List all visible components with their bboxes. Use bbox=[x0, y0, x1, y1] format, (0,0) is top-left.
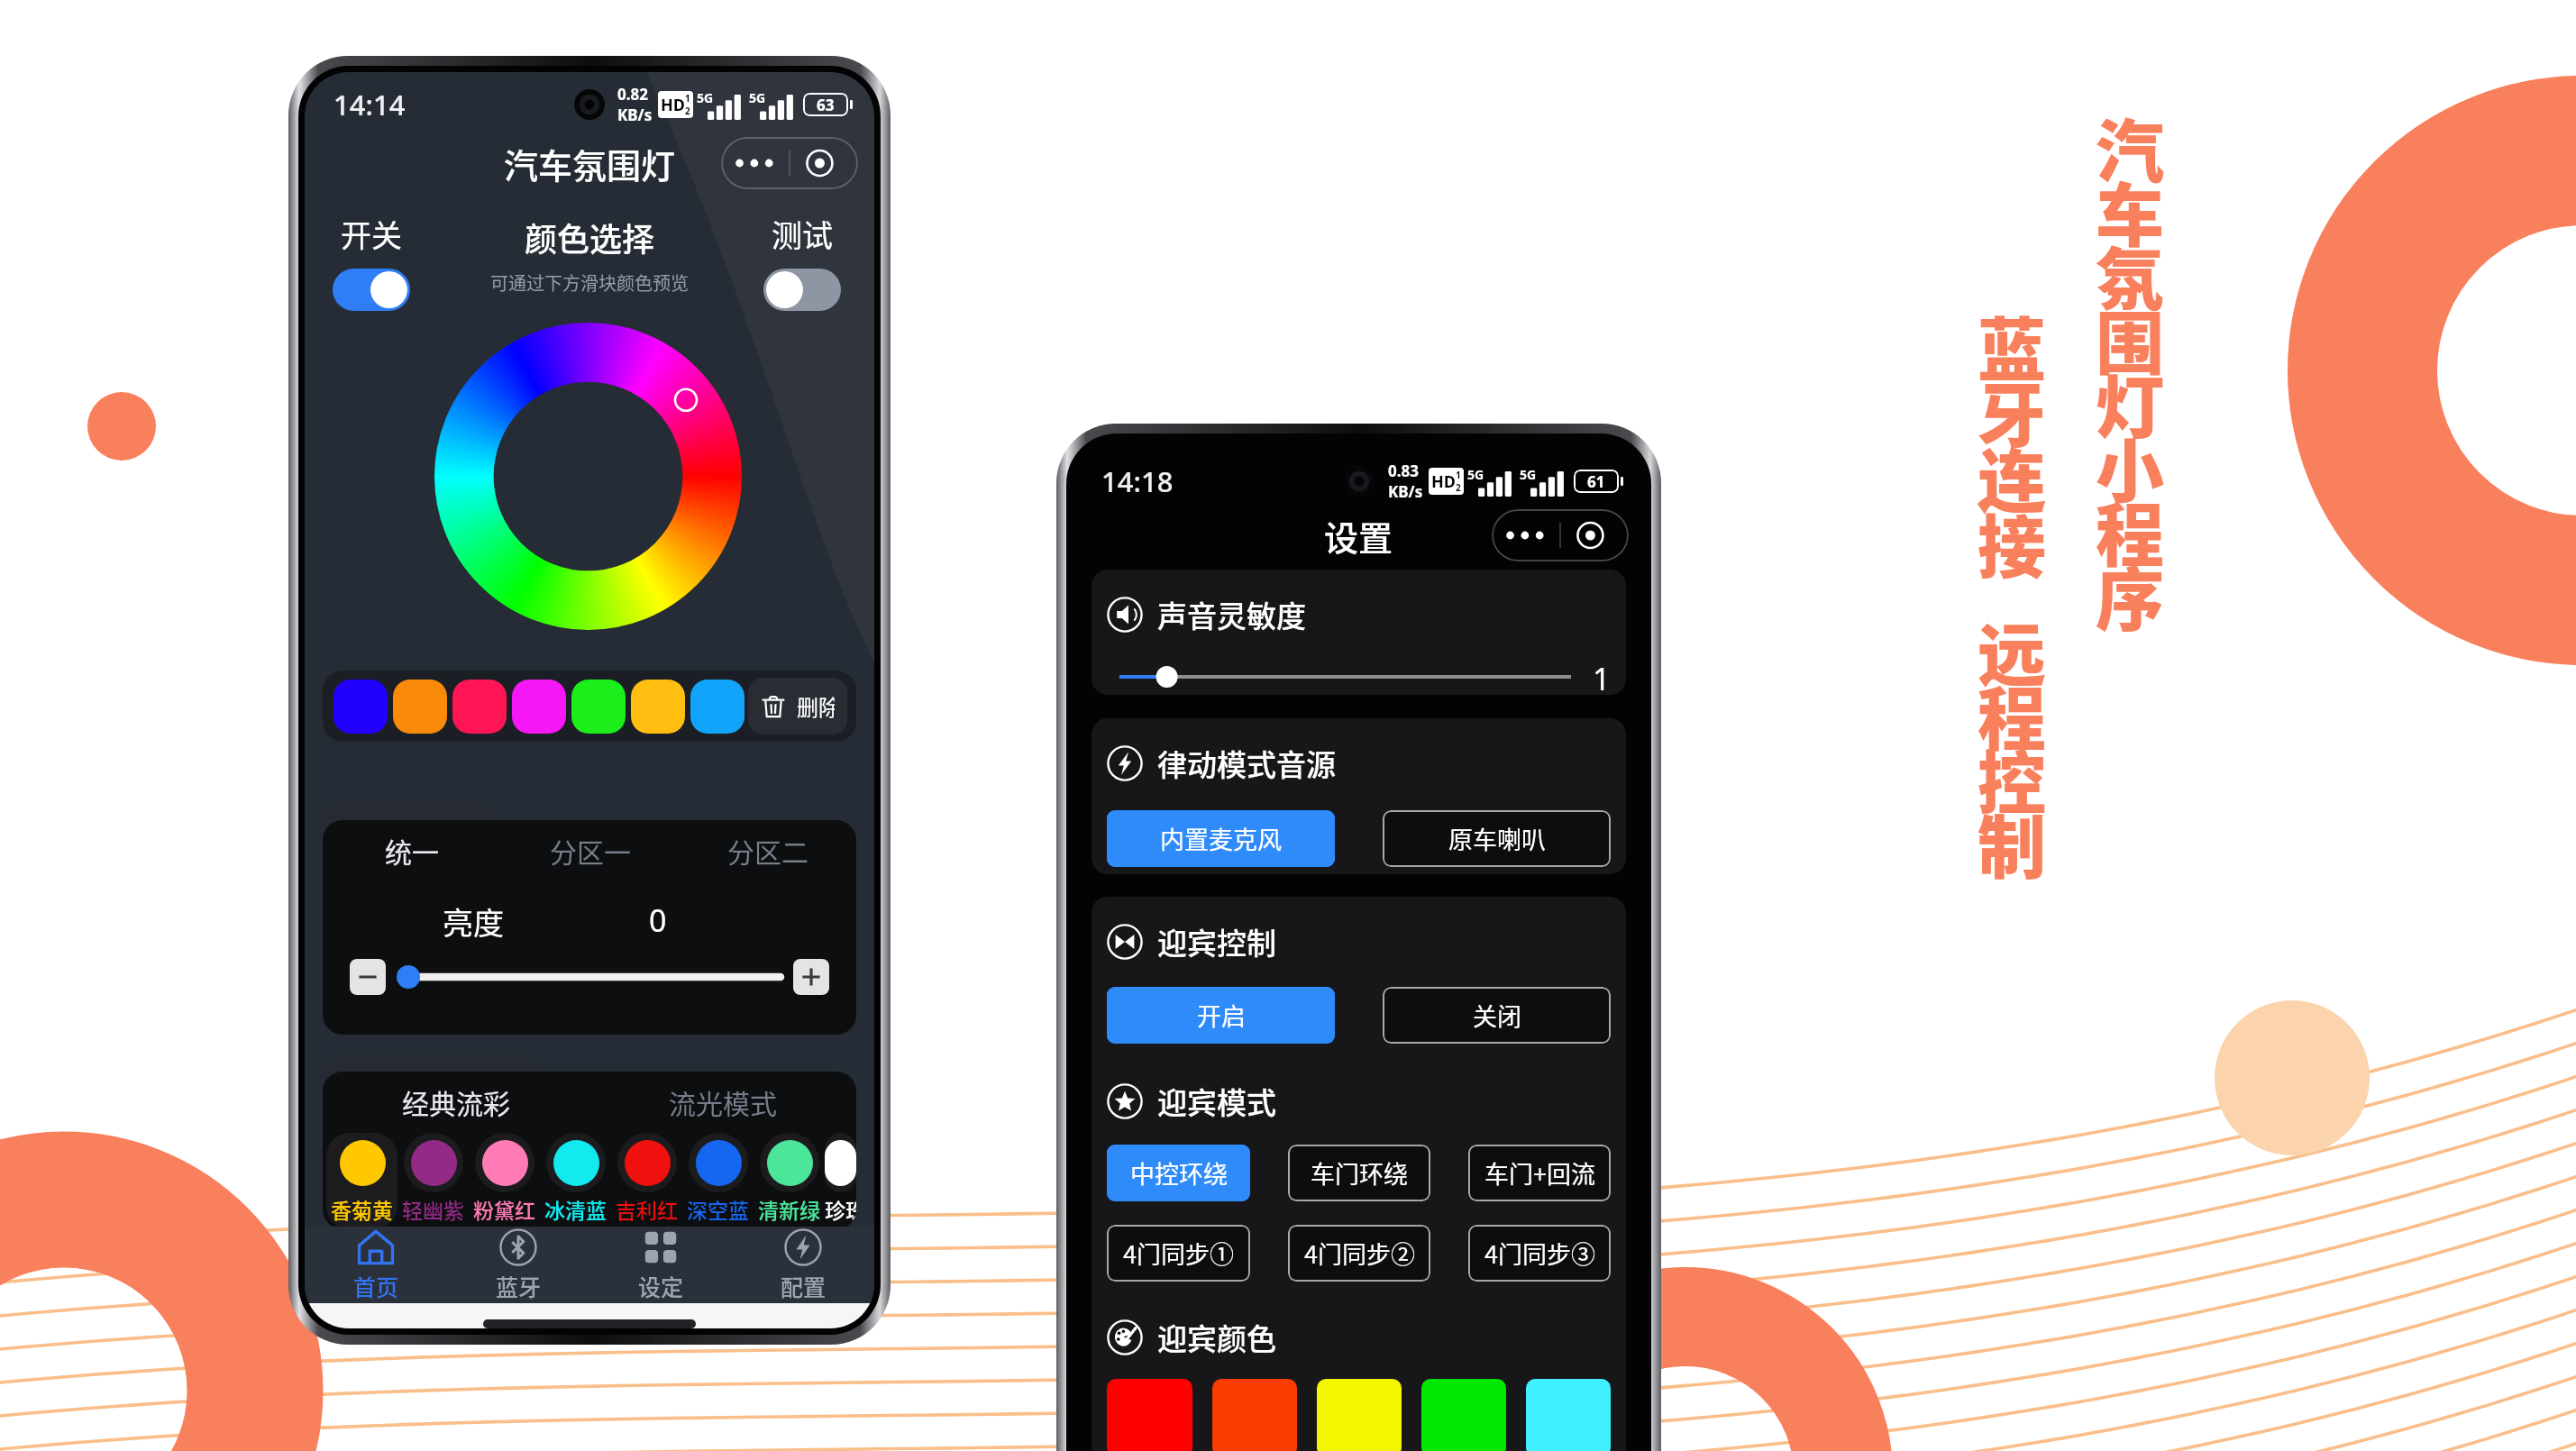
button[interactable]: Switch off bbox=[763, 269, 841, 311]
button[interactable]: 4门同步② bbox=[1288, 1225, 1430, 1282]
button[interactable]: More options bbox=[721, 137, 858, 189]
staticText: 原车喇叭 bbox=[1448, 821, 1546, 856]
staticText: 可通过下方滑块颜色预览 bbox=[490, 269, 689, 296]
staticText: 粉黛红 bbox=[473, 1194, 535, 1224]
staticText: 程 bbox=[2096, 481, 2164, 580]
button[interactable]: 轻幽紫 bbox=[397, 1133, 469, 1229]
button[interactable]: Decrease bbox=[350, 959, 386, 995]
staticText: 14:18 bbox=[1101, 462, 1174, 500]
staticText: 轻幽紫 bbox=[402, 1194, 464, 1224]
button[interactable]: Saved colour 3 bbox=[452, 680, 507, 734]
staticText: 亮度 bbox=[443, 899, 504, 943]
staticText: 分区二 bbox=[727, 831, 808, 870]
staticText: 设定 bbox=[638, 1270, 684, 1302]
button[interactable]: Welcome colour 1 bbox=[1107, 1379, 1192, 1451]
staticText: 5G bbox=[749, 89, 766, 106]
button[interactable]: 4门同步① bbox=[1107, 1225, 1250, 1282]
staticText: 0.82 bbox=[617, 84, 648, 105]
staticText: 1 bbox=[1456, 469, 1461, 481]
staticText: 迎宾颜色 bbox=[1157, 1316, 1276, 1359]
staticText: 63 bbox=[817, 95, 835, 115]
button[interactable]: 深空蓝 bbox=[682, 1133, 754, 1229]
button[interactable]: 蓝牙 bbox=[447, 1227, 589, 1304]
button[interactable]: 吉利红 bbox=[611, 1133, 682, 1229]
staticText: 程 bbox=[1978, 665, 2046, 764]
staticText: 蓝牙 bbox=[496, 1270, 542, 1302]
staticText: 序 bbox=[2096, 545, 2164, 644]
staticText: 统一 bbox=[385, 831, 439, 870]
staticText: 配置 bbox=[781, 1270, 827, 1302]
button[interactable]: Saved colour 4 bbox=[512, 680, 566, 734]
button[interactable]: 分区一 bbox=[501, 820, 679, 880]
staticText: 氛 bbox=[2096, 225, 2164, 324]
staticText: 深空蓝 bbox=[687, 1194, 749, 1224]
button[interactable]: Saved colour 7 bbox=[690, 680, 744, 734]
button[interactable]: Welcome colour 2 bbox=[1212, 1379, 1297, 1451]
staticText: 连 bbox=[1978, 427, 2046, 526]
staticText: 测试 bbox=[772, 212, 833, 256]
button[interactable]: 车门环绕 bbox=[1288, 1145, 1430, 1201]
button[interactable]: Saved colour 2 bbox=[393, 680, 447, 734]
staticText: 灯 bbox=[2096, 353, 2164, 452]
staticText: 4门同步② bbox=[1304, 1236, 1415, 1271]
button[interactable]: 流光模式 bbox=[589, 1072, 856, 1131]
button[interactable]: Welcome colour 4 bbox=[1421, 1379, 1506, 1451]
staticText: 接 bbox=[1978, 493, 2046, 592]
button[interactable]: 原车喇叭 bbox=[1383, 810, 1611, 867]
staticText: 迎宾控制 bbox=[1157, 920, 1276, 963]
staticText: 4门同步③ bbox=[1484, 1236, 1595, 1271]
staticText: 2 bbox=[685, 105, 690, 117]
button[interactable]: Welcome colour 5 bbox=[1526, 1379, 1611, 1451]
button[interactable]: Saved colour 6 bbox=[631, 680, 685, 734]
button[interactable]: 内置麦克风 bbox=[1107, 810, 1335, 867]
button[interactable]: 关闭 bbox=[1383, 987, 1611, 1044]
button[interactable]: More options bbox=[1492, 509, 1629, 561]
staticText: 1 bbox=[685, 92, 690, 105]
button[interactable]: 删除 bbox=[748, 678, 847, 735]
button[interactable]: 中控环绕 bbox=[1107, 1145, 1250, 1201]
button[interactable]: Saved colour 5 bbox=[571, 680, 626, 734]
button[interactable]: Welcome colour 3 bbox=[1317, 1379, 1402, 1451]
button[interactable]: 4门同步③ bbox=[1468, 1225, 1611, 1282]
staticText: 车门环绕 bbox=[1311, 1155, 1408, 1191]
staticText: 迎宾模式 bbox=[1157, 1080, 1276, 1123]
staticText: 汽 bbox=[2096, 97, 2164, 196]
button[interactable]: 开启 bbox=[1107, 987, 1335, 1044]
button[interactable]: 设定 bbox=[589, 1227, 732, 1304]
staticText: 颜色选择 bbox=[525, 214, 655, 260]
button[interactable]: Switch on bbox=[333, 269, 410, 311]
staticText: 删除 bbox=[797, 690, 835, 722]
button[interactable]: 统一 bbox=[323, 820, 501, 880]
button[interactable]: 粉黛红 bbox=[469, 1133, 540, 1229]
staticText: 蓝 bbox=[1978, 296, 2046, 395]
button[interactable]: 车门+回流 bbox=[1468, 1145, 1611, 1201]
staticText: 中控环绕 bbox=[1130, 1155, 1228, 1191]
staticText: KB/s bbox=[617, 105, 653, 125]
staticText: 61 bbox=[1587, 471, 1605, 492]
staticText: HD bbox=[661, 94, 685, 116]
staticText: 围 bbox=[2096, 289, 2164, 388]
staticText: HD bbox=[1431, 470, 1456, 493]
staticText: 首页 bbox=[353, 1270, 399, 1302]
button[interactable]: 珍珠白 bbox=[825, 1133, 856, 1229]
button[interactable]: 配置 bbox=[732, 1227, 874, 1304]
staticText: 流光模式 bbox=[669, 1082, 777, 1121]
button[interactable]: 首页 bbox=[305, 1227, 447, 1304]
staticText: 开启 bbox=[1197, 998, 1246, 1033]
staticText: 关闭 bbox=[1473, 998, 1521, 1033]
staticText: 0 bbox=[649, 899, 667, 941]
staticText: 5G bbox=[1467, 466, 1484, 483]
button[interactable]: 香菊黄 bbox=[326, 1133, 397, 1229]
staticText: 14:14 bbox=[333, 86, 406, 123]
button[interactable]: Increase bbox=[793, 959, 829, 995]
button[interactable]: 分区二 bbox=[679, 820, 856, 880]
staticText: 小 bbox=[2096, 417, 2164, 516]
button[interactable]: 经典流彩 bbox=[323, 1072, 589, 1131]
staticText: 控 bbox=[1978, 729, 2046, 828]
staticText: 汽车氛围灯 bbox=[504, 139, 676, 188]
staticText: 2 bbox=[1456, 481, 1461, 494]
staticText: 车门+回流 bbox=[1484, 1155, 1595, 1191]
button[interactable]: 清新绿 bbox=[754, 1133, 825, 1229]
button[interactable]: 冰清蓝 bbox=[540, 1133, 611, 1229]
button[interactable]: Saved colour 1 bbox=[333, 680, 388, 734]
